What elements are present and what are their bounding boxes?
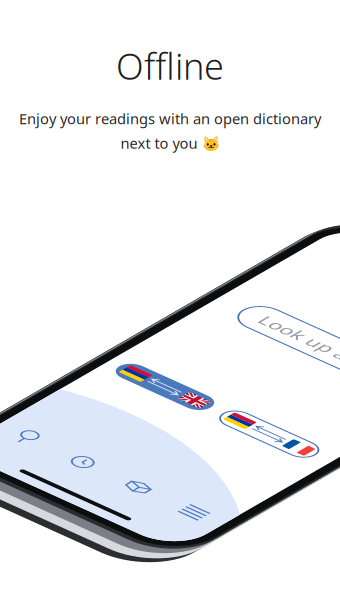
staticText: Enjoy your readings with an open diction… [19,109,321,128]
button[interactable]: Dictionary [119,429,174,471]
button[interactable] [123,299,214,325]
button[interactable]: History [63,429,119,471]
staticText: Offline [116,42,224,90]
staticText: next to you 🐱 [120,133,219,153]
button[interactable]: Menu [174,429,230,471]
button[interactable]: Search [8,429,63,471]
